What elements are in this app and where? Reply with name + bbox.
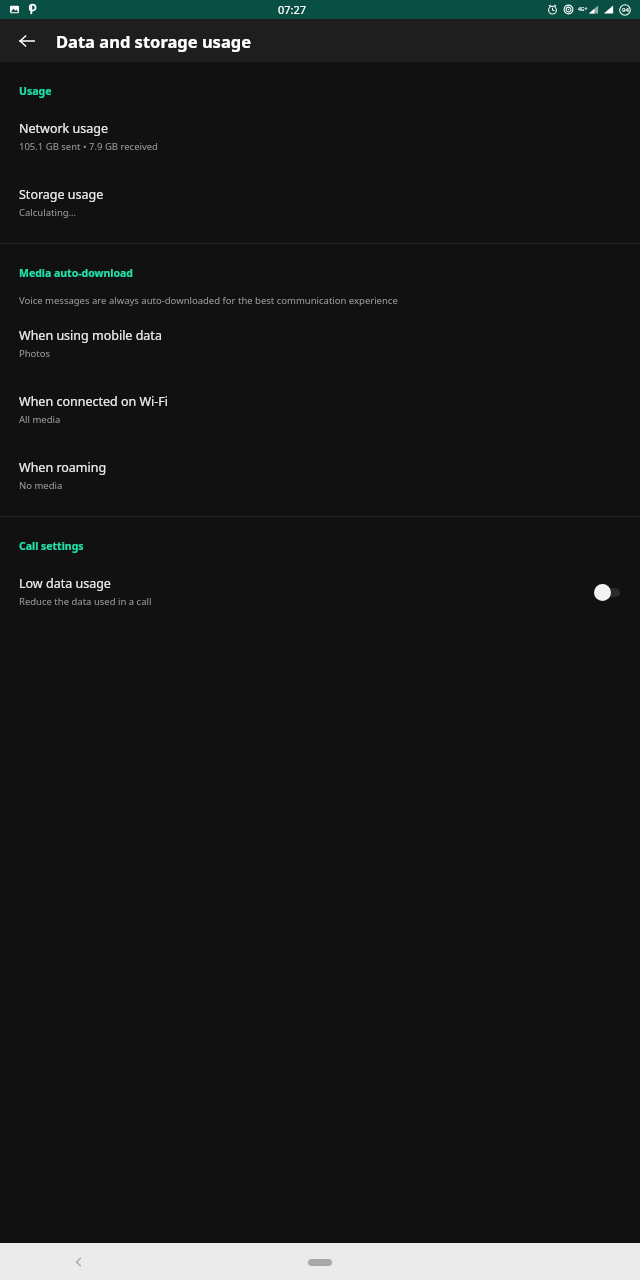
staticText: Usage: [19, 84, 52, 98]
staticText: All media: [19, 413, 61, 426]
staticText: Reduce the data used in a call: [19, 595, 152, 608]
staticText: No media: [19, 479, 63, 492]
staticText: Voice messages are always auto-downloade…: [19, 294, 398, 307]
button[interactable]: When using mobile data: [0, 327, 640, 360]
button[interactable]: Network usage: [0, 120, 640, 153]
staticText: 94: [622, 6, 629, 14]
staticText: Network usage: [19, 120, 109, 137]
button[interactable]: Low data usage: [0, 575, 640, 608]
button[interactable]: Storage usage: [0, 186, 640, 219]
button[interactable]: Back: [10, 24, 44, 58]
staticText: Photos: [19, 347, 51, 360]
button[interactable]: Home: [290, 1249, 350, 1275]
staticText: 07:27: [278, 2, 307, 17]
staticText: 4G+: [578, 6, 588, 13]
staticText: Call settings: [19, 539, 84, 553]
staticText: When using mobile data: [19, 327, 162, 344]
staticText: Storage usage: [19, 186, 104, 203]
staticText: Data and storage usage: [56, 30, 252, 52]
staticText: Low data usage: [19, 575, 111, 592]
button[interactable]: Back: [62, 1245, 96, 1279]
staticText: Calculating…: [19, 206, 77, 219]
button[interactable]: When connected on Wi-Fi: [0, 393, 640, 426]
staticText: Media auto-download: [19, 266, 133, 280]
button[interactable]: When roaming: [0, 459, 640, 492]
staticText: When connected on Wi-Fi: [19, 393, 169, 410]
staticText: When roaming: [19, 459, 107, 476]
staticText: 105.1 GB sent • 7.9 GB received: [19, 140, 158, 153]
